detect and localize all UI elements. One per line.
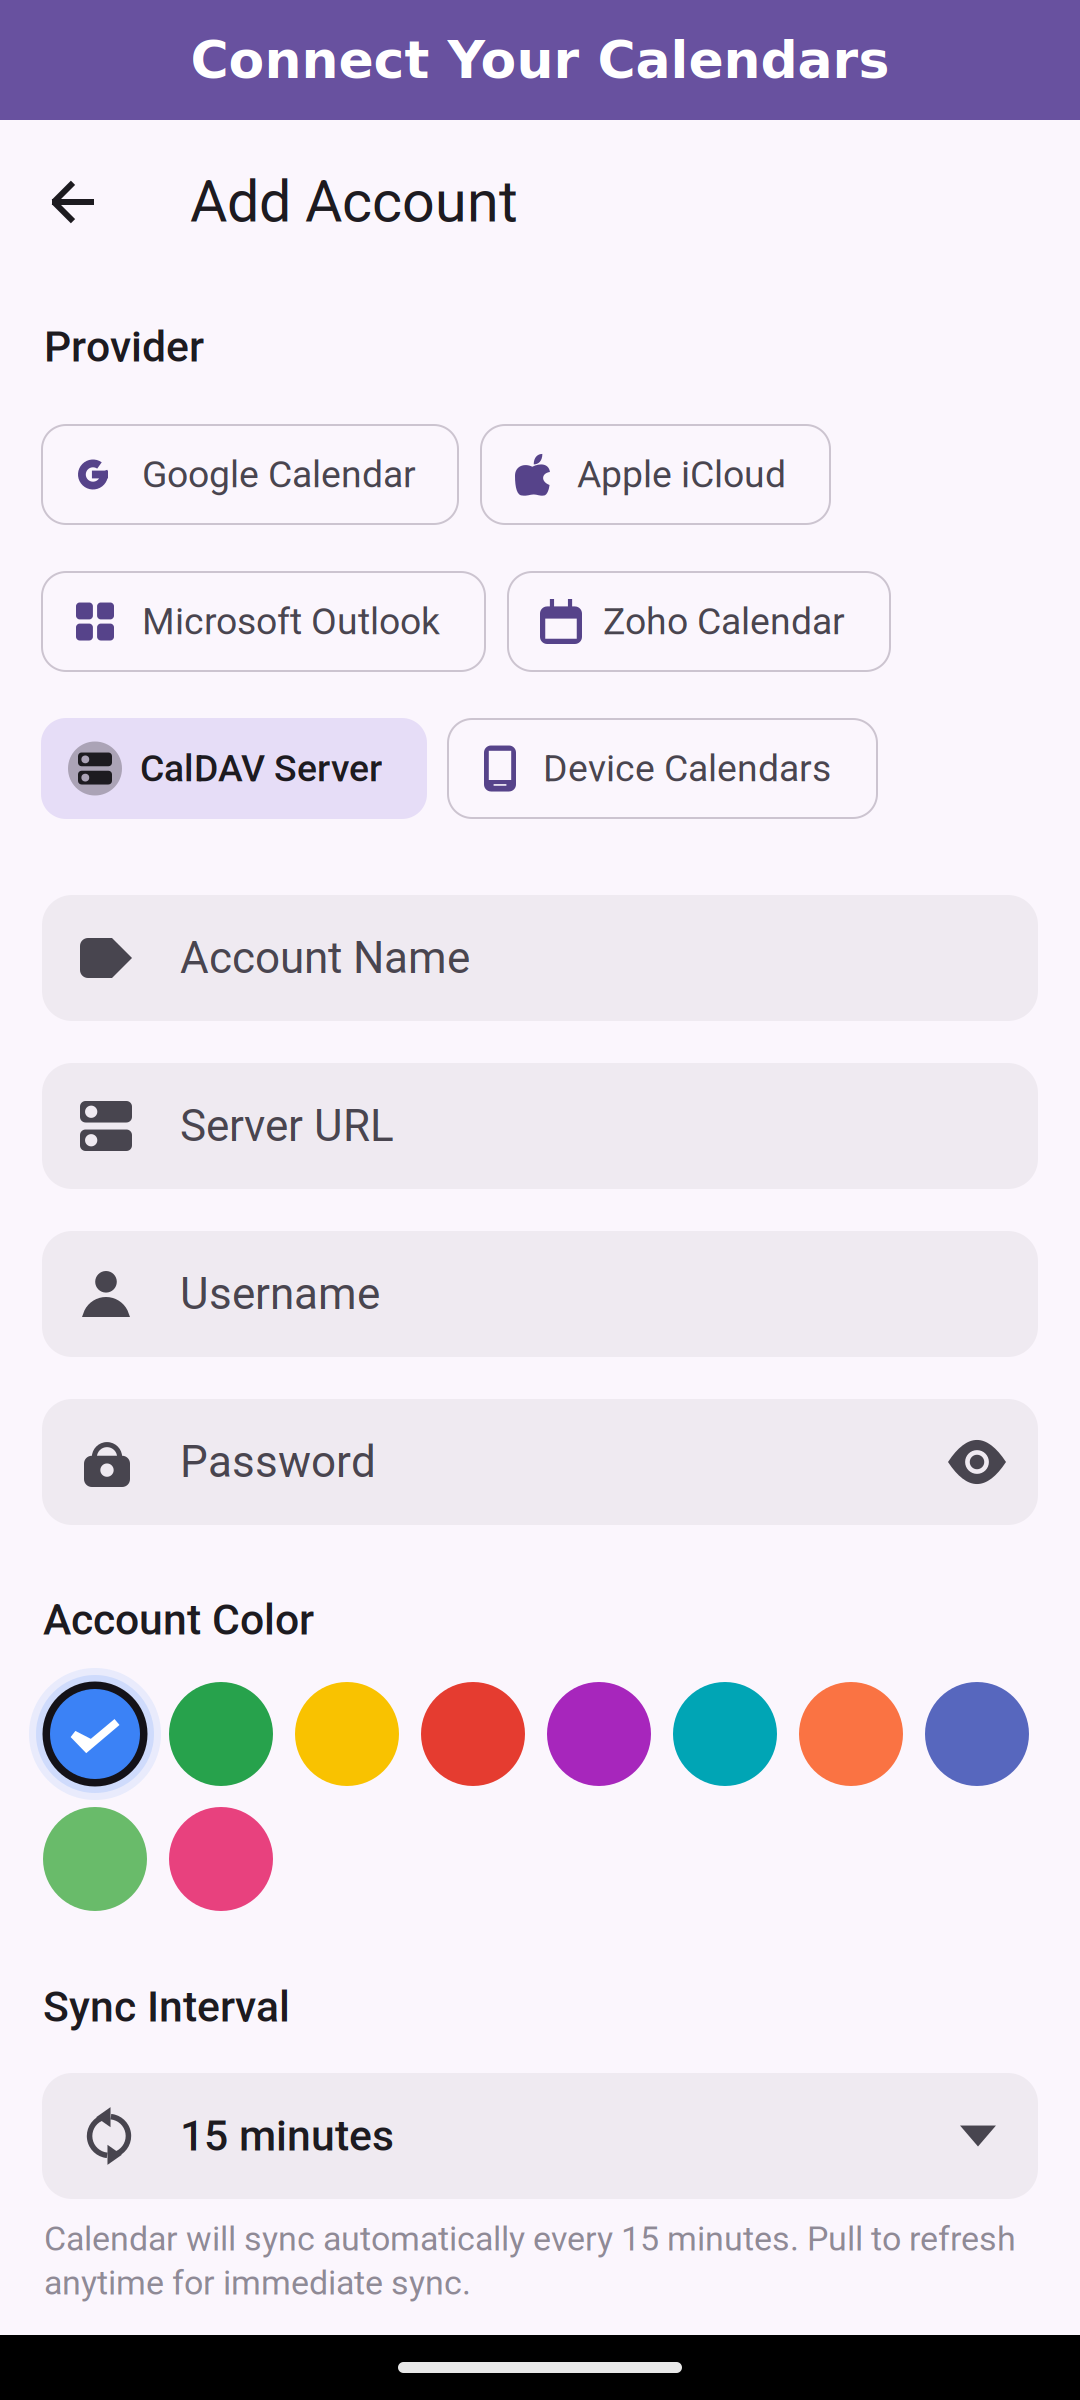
staticText: Account Color [43,1595,314,1645]
button[interactable]: Account color [421,1682,525,1786]
button[interactable]: Account color [925,1682,1029,1786]
staticText: Server URL [180,1100,394,1152]
staticText: Username [180,1268,380,1320]
button[interactable]: Account color [295,1682,399,1786]
staticText: CalDAV Server [140,747,382,790]
button[interactable]: Google Calendar [42,425,458,524]
button[interactable]: Account color [799,1682,903,1786]
staticText: Connect Your Calendars [190,30,889,90]
staticText: Zoho Calendar [603,600,845,643]
button[interactable]: Apple iCloud [481,425,830,524]
staticText: Add Account [190,168,518,236]
button[interactable]: CalDAV Server [42,719,426,818]
button[interactable]: Password [42,1399,1038,1525]
staticText: Password [180,1436,376,1488]
staticText: Account Name [180,932,470,984]
button[interactable]: Account color [673,1682,777,1786]
staticText: 15 minutes [180,2111,394,2161]
button[interactable]: 15 minutes [42,2073,1038,2199]
button[interactable]: Account Name [42,895,1038,1021]
button[interactable]: Show password [948,1441,1006,1483]
button[interactable]: Device Calendars [448,719,877,818]
button[interactable]: Back [40,169,106,235]
staticText: Google Calendar [142,453,416,496]
staticText: Device Calendars [543,747,831,790]
button[interactable]: Account color [169,1682,273,1786]
button[interactable]: Account color [43,1682,147,1786]
staticText: Provider [44,322,204,372]
button[interactable]: Zoho Calendar [508,572,890,671]
button[interactable]: Username [42,1231,1038,1357]
button[interactable]: Server URL [42,1063,1038,1189]
staticText: Apple iCloud [577,453,786,496]
button[interactable]: Account color [169,1807,273,1911]
button[interactable]: Account color [43,1807,147,1911]
button[interactable]: Microsoft Outlook [42,572,485,671]
staticText: Microsoft Outlook [142,600,440,643]
staticText: Calendar will sync automatically every 1… [44,2219,1016,2303]
button[interactable]: Account color [547,1682,651,1786]
staticText: Sync Interval [43,1982,290,2032]
